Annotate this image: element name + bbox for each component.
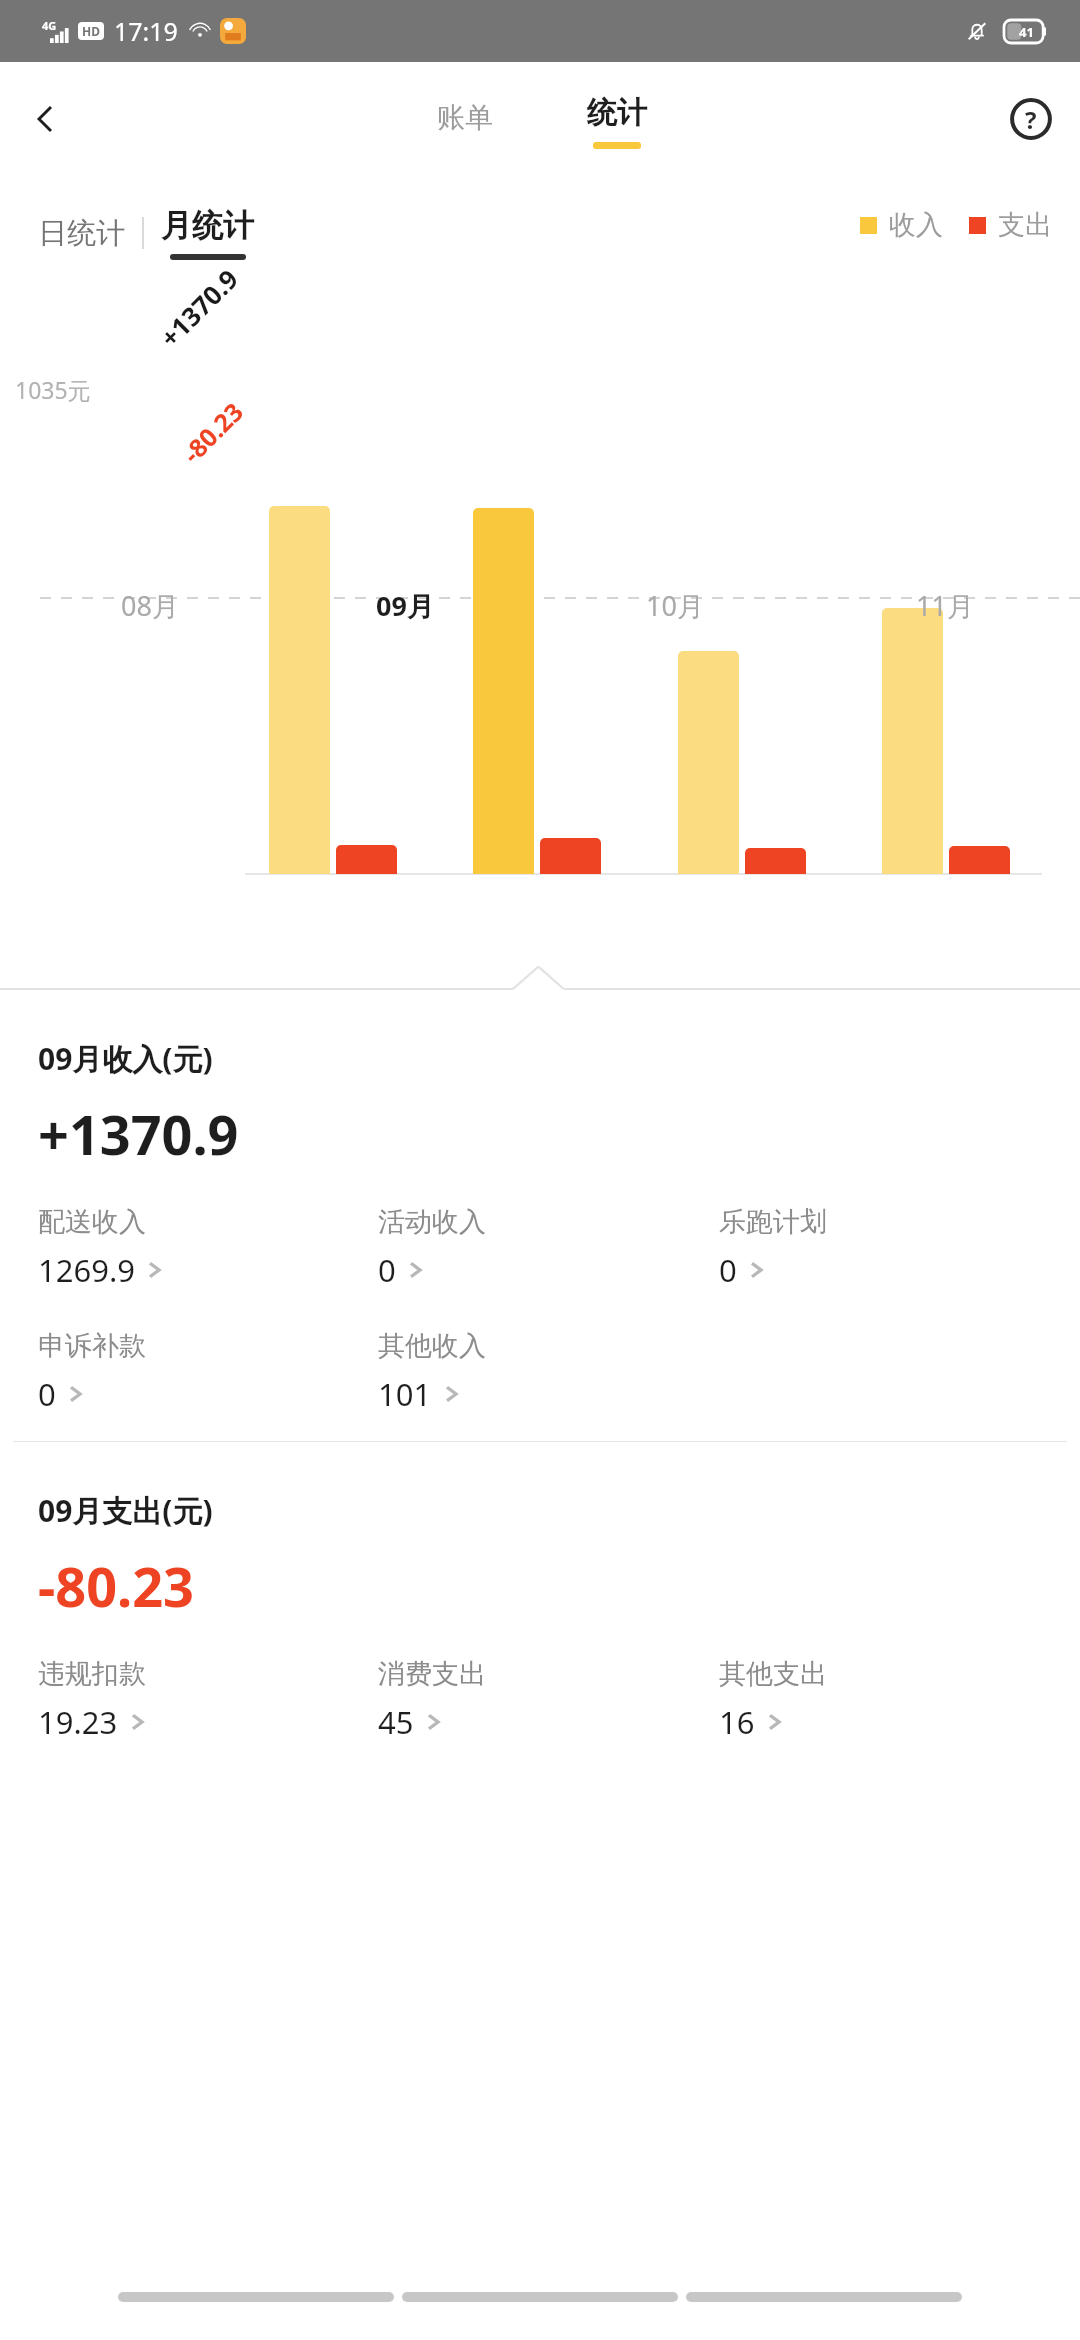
staticText: 月统计: [161, 206, 254, 245]
button[interactable]: 配送收入: [38, 1205, 170, 1295]
staticText: 11月: [916, 587, 974, 624]
staticText: 41: [1019, 23, 1034, 41]
staticText: 10月: [646, 587, 704, 624]
staticText: 0: [719, 1249, 737, 1291]
button[interactable]: 消费支出: [378, 1657, 494, 1747]
staticText: +1370.9: [152, 261, 245, 354]
button[interactable]: Back: [12, 86, 78, 152]
staticText: -80.23: [175, 394, 250, 470]
staticText: 收入: [889, 208, 943, 242]
button[interactable]: 乐跑计划: [719, 1205, 835, 1295]
staticText: 101: [378, 1373, 432, 1415]
staticText: +1370.9: [38, 1097, 239, 1171]
button[interactable]: [118, 2292, 394, 2302]
staticText: 申诉补款: [38, 1329, 146, 1363]
staticText: 09月支出(元): [38, 1490, 213, 1531]
staticText: 支出: [998, 208, 1052, 242]
button[interactable]: 其他收入: [378, 1329, 494, 1419]
staticText: 17:19: [114, 14, 178, 48]
staticText: 配送收入: [38, 1205, 146, 1239]
staticText: 0: [38, 1373, 56, 1415]
button[interactable]: 11月: [906, 577, 984, 634]
button[interactable]: 统计: [561, 90, 673, 153]
button[interactable]: 其他支出: [719, 1657, 835, 1747]
staticText: -80.23: [38, 1549, 195, 1623]
staticText: 08月: [121, 587, 179, 624]
staticText: 1269.9: [38, 1249, 135, 1291]
button[interactable]: Help: [998, 86, 1064, 152]
button[interactable]: 日统计: [38, 207, 125, 260]
staticText: 统计: [587, 94, 647, 132]
other: Silent: [964, 18, 990, 44]
staticText: 消费支出: [378, 1657, 486, 1691]
staticText: 其他支出: [719, 1657, 827, 1691]
staticText: 09月收入(元): [38, 1038, 213, 1079]
button[interactable]: 月统计: [161, 206, 254, 260]
staticText: 16: [719, 1701, 755, 1743]
button[interactable]: 申诉补款: [38, 1329, 154, 1419]
button[interactable]: 活动收入: [378, 1205, 494, 1295]
button[interactable]: 账单: [407, 90, 523, 145]
staticText: 乐跑计划: [719, 1205, 827, 1239]
staticText: 其他收入: [378, 1329, 486, 1363]
staticText: HD: [82, 23, 100, 39]
staticText: 45: [378, 1701, 414, 1743]
button[interactable]: 08月: [111, 577, 189, 634]
button[interactable]: 09月: [366, 577, 444, 634]
staticText: 账单: [437, 100, 493, 135]
button[interactable]: [686, 2292, 962, 2302]
staticText: ?: [1025, 103, 1037, 136]
staticText: 违规扣款: [38, 1657, 146, 1691]
staticText: 活动收入: [378, 1205, 486, 1239]
button[interactable]: 10月: [636, 577, 714, 634]
button[interactable]: 违规扣款: [38, 1657, 154, 1747]
staticText: 4G: [42, 18, 57, 33]
staticText: 日统计: [38, 215, 125, 252]
staticText: 1035元: [15, 374, 91, 405]
staticText: 19.23: [38, 1701, 118, 1743]
button[interactable]: [402, 2292, 678, 2302]
staticText: 0: [378, 1249, 396, 1291]
staticText: 09月: [376, 587, 434, 624]
